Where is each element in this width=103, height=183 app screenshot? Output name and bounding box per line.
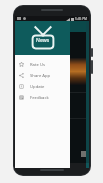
staticText: Feedback: [30, 95, 49, 101]
staticText: 5:45 PM: [75, 17, 88, 21]
staticText: Share App: [30, 73, 51, 79]
button[interactable]: Rate Us: [15, 59, 70, 70]
button[interactable]: News app logo: [15, 21, 70, 55]
staticText: Rate Us: [30, 62, 45, 68]
button[interactable]: Update: [15, 81, 70, 92]
staticText: News: [36, 37, 50, 44]
button[interactable]: Feedback: [15, 92, 70, 103]
button[interactable]: Share App: [15, 70, 70, 81]
staticText: Update: [30, 84, 45, 90]
